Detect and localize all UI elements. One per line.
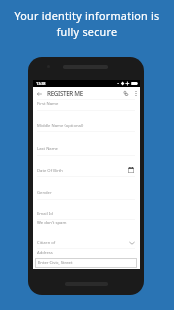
button[interactable]	[33, 182, 140, 203]
staticText: Date Of Birth	[37, 168, 63, 174]
other: Pick date	[127, 166, 134, 173]
staticText: First Name	[37, 101, 59, 107]
button[interactable]	[33, 138, 140, 159]
staticText: Address	[37, 250, 53, 256]
staticText: REGISTER ME	[47, 89, 83, 98]
staticText: Gender	[37, 190, 52, 196]
button[interactable]	[33, 204, 140, 228]
staticText: Email Id	[37, 211, 53, 217]
staticText: We don't spam	[37, 220, 67, 226]
staticText: Your identity information is fully secur…	[14, 8, 160, 39]
staticText: Middle Name (optional)	[37, 123, 84, 129]
button[interactable]	[33, 95, 140, 115]
button[interactable]	[33, 116, 140, 137]
button[interactable]: Navigate up	[33, 87, 45, 100]
staticText: Enter Civic, Street	[38, 260, 73, 266]
button[interactable]	[33, 233, 140, 250]
button[interactable]: Call	[120, 87, 131, 100]
staticText: Last Name	[37, 146, 58, 152]
button[interactable]: Enter Civic, Street	[35, 258, 137, 268]
other: Expand	[128, 239, 135, 246]
staticText: Citizen of	[37, 240, 56, 246]
button[interactable]: More options	[131, 87, 140, 100]
staticText: 13:38	[36, 81, 46, 86]
button[interactable]	[33, 160, 140, 181]
